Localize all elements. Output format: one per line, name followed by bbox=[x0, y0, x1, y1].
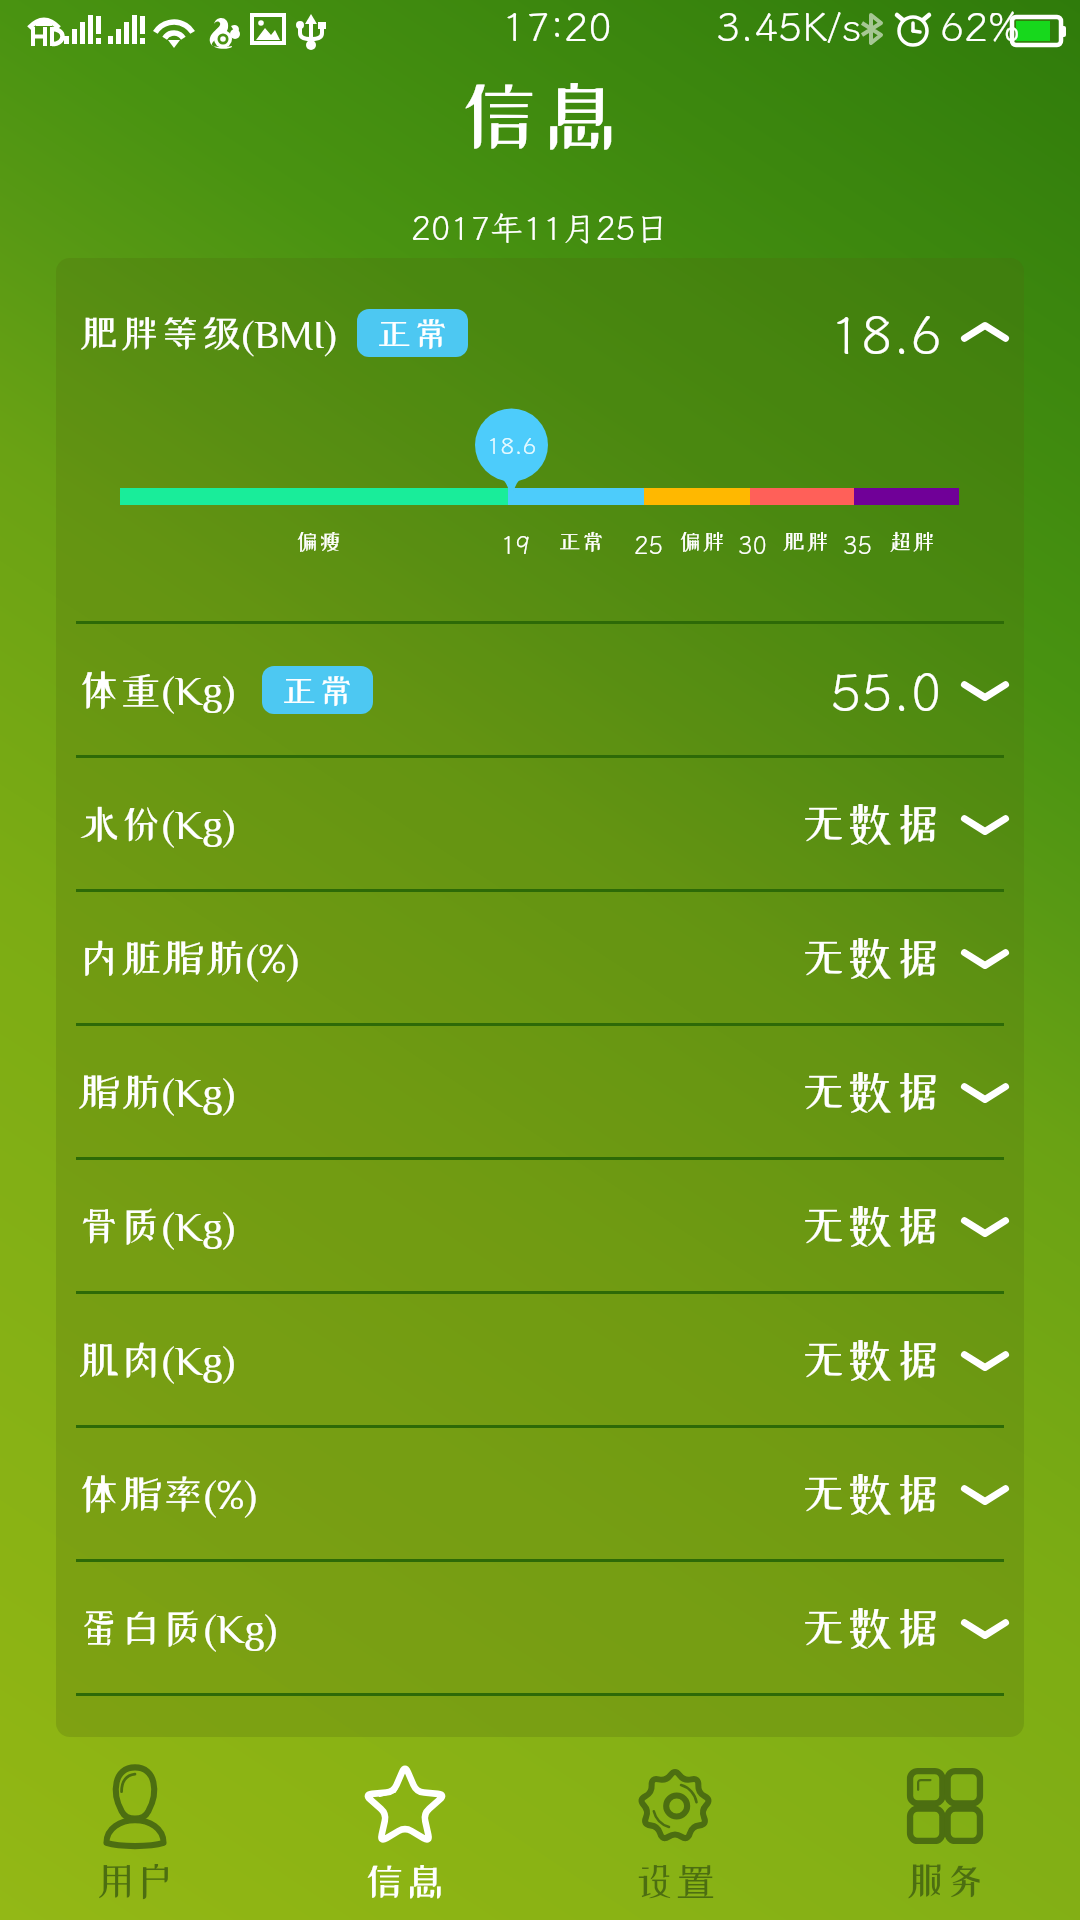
staticText: 偏瘦 bbox=[295, 530, 343, 553]
staticText: 无数据 bbox=[800, 1069, 942, 1115]
button[interactable]: Expand bbox=[958, 1199, 1012, 1253]
staticText: 体重(Kg) bbox=[78, 669, 236, 710]
button[interactable]: 体重(Kg) bbox=[56, 624, 1024, 755]
staticText: 肌肉(Kg) bbox=[78, 1339, 236, 1380]
button[interactable]: 蛋白质(Kg) bbox=[56, 1562, 1024, 1693]
staticText: 信息 bbox=[458, 75, 622, 155]
staticText: 2017年11月25日 bbox=[411, 206, 669, 249]
staticText: 蛋白质(Kg) bbox=[78, 1607, 278, 1648]
staticText: 肥胖 bbox=[782, 530, 830, 553]
button[interactable]: 肌肉(Kg) bbox=[56, 1294, 1024, 1425]
button[interactable]: 正常 bbox=[357, 309, 468, 357]
staticText: 25 bbox=[634, 529, 663, 561]
staticText: 无数据 bbox=[800, 1605, 942, 1651]
staticText: 无数据 bbox=[800, 1471, 942, 1517]
button[interactable]: 服务 bbox=[810, 1738, 1080, 1920]
button[interactable]: 骨质(Kg) bbox=[56, 1160, 1024, 1291]
staticText: 62% bbox=[940, 0, 1020, 53]
button[interactable]: 正常 bbox=[262, 666, 373, 714]
button[interactable]: 信息 bbox=[270, 1738, 540, 1920]
staticText: 服务 bbox=[904, 1861, 986, 1901]
button[interactable]: 体脂率(%) bbox=[56, 1428, 1024, 1559]
staticText: 超胖 bbox=[888, 530, 936, 553]
staticText: 体脂率(%) bbox=[78, 1473, 257, 1514]
button[interactable]: 肥胖等级(BMI) bbox=[56, 258, 1024, 408]
button[interactable]: Expand bbox=[958, 797, 1012, 851]
staticText: 信息 bbox=[364, 1861, 446, 1901]
button[interactable]: Expand bbox=[958, 1333, 1012, 1387]
staticText: 用户 bbox=[94, 1861, 176, 1901]
staticText: 偏胖 bbox=[678, 530, 726, 553]
button[interactable]: Expand bbox=[958, 931, 1012, 985]
staticText: 内脏脂肪(%) bbox=[78, 937, 299, 978]
button[interactable]: 内脏脂肪(%) bbox=[56, 892, 1024, 1023]
button[interactable]: Expand bbox=[958, 663, 1012, 717]
staticText: 无数据 bbox=[800, 801, 942, 847]
staticText: 正常 bbox=[376, 315, 450, 351]
staticText: 18.6 bbox=[471, 430, 552, 460]
staticText: 18.6 bbox=[830, 299, 942, 367]
button[interactable]: 用户 bbox=[0, 1738, 270, 1920]
button[interactable]: 设置 bbox=[540, 1738, 810, 1920]
button[interactable]: Expand bbox=[958, 1467, 1012, 1521]
button[interactable]: Collapse bbox=[958, 306, 1012, 360]
button[interactable]: Expand bbox=[958, 1065, 1012, 1119]
staticText: 正常 bbox=[281, 672, 355, 708]
staticText: 35 bbox=[843, 529, 872, 561]
staticText: 55.0 bbox=[830, 656, 942, 724]
staticText: 肥胖等级(BMI) bbox=[78, 313, 337, 353]
staticText: 无数据 bbox=[800, 1337, 942, 1383]
button[interactable]: 水份(Kg) bbox=[56, 758, 1024, 889]
staticText: 正常 bbox=[558, 530, 606, 553]
staticText: 3.45K/s bbox=[716, 0, 862, 53]
button[interactable]: 脂肪(Kg) bbox=[56, 1026, 1024, 1157]
staticText: 设置 bbox=[634, 1861, 716, 1901]
staticText: 骨质(Kg) bbox=[78, 1205, 236, 1246]
staticText: 30 bbox=[738, 529, 767, 561]
staticText: 脂肪(Kg) bbox=[78, 1071, 236, 1112]
staticText: 水份(Kg) bbox=[78, 803, 236, 844]
staticText: 无数据 bbox=[800, 1203, 942, 1249]
staticText: 无数据 bbox=[800, 935, 942, 981]
staticText: 17:20 bbox=[502, 0, 612, 53]
staticText: 19 bbox=[501, 529, 530, 561]
button[interactable]: Expand bbox=[958, 1601, 1012, 1655]
